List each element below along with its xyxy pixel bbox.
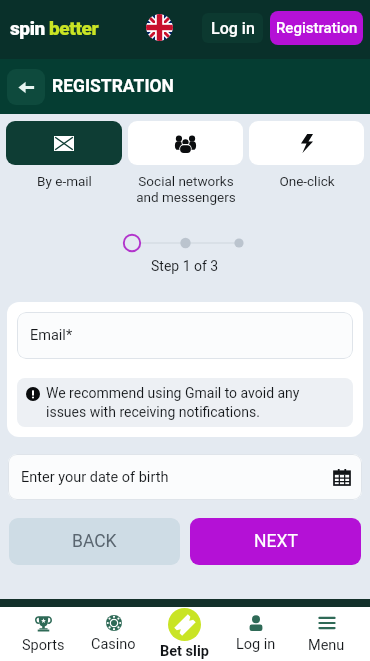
staticText: REGISTRATION: [52, 76, 174, 97]
button[interactable]: Enter your date of birth: [8, 454, 362, 500]
button[interactable]: [6, 121, 122, 165]
button[interactable]: BACK: [9, 518, 180, 565]
button[interactable]: [128, 121, 243, 165]
staticText: Registration: [276, 19, 358, 37]
staticText: One-click: [279, 173, 335, 189]
button[interactable]: Log in: [220, 607, 291, 661]
staticText: Bet slip: [160, 643, 209, 660]
button[interactable]: Registration: [270, 11, 363, 45]
staticText: Casino: [91, 636, 136, 653]
staticText: Enter your date of birth: [21, 469, 169, 486]
button[interactable]: Back: [7, 69, 45, 105]
button[interactable]: [249, 121, 364, 165]
button[interactable]: Email*: [17, 312, 353, 359]
button[interactable]: Menu: [291, 607, 362, 661]
staticText: spin: [10, 17, 45, 39]
staticText: Step 1 of 3: [151, 258, 219, 274]
button[interactable]: Casino: [78, 607, 149, 661]
staticText: Email*: [30, 327, 73, 344]
staticText: We recommend using Gmail to avoid any is…: [46, 385, 343, 420]
button[interactable]: NEXT: [190, 518, 361, 565]
staticText: Log in: [236, 636, 276, 653]
staticText: Social networks and messengers: [136, 173, 236, 206]
staticText: Sports: [22, 637, 65, 654]
staticText: Log in: [211, 19, 255, 38]
staticText: NEXT: [254, 531, 298, 552]
staticText: BACK: [72, 531, 117, 552]
button[interactable]: Sports: [8, 607, 78, 661]
button[interactable]: Language: [146, 14, 173, 41]
staticText: better: [49, 17, 99, 39]
button[interactable]: Bet slip: [149, 607, 220, 661]
button[interactable]: Log in: [202, 13, 263, 43]
staticText: By e-mail: [37, 173, 92, 189]
staticText: Menu: [308, 637, 345, 654]
